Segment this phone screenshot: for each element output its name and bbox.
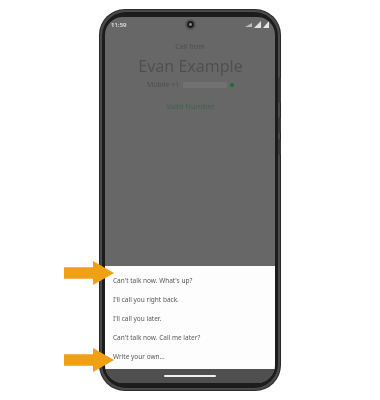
staticText: I'll call you later. (113, 314, 162, 323)
staticText: Call from (175, 42, 205, 52)
staticText: Can't talk now. What's up? (113, 276, 193, 285)
button[interactable]: Can't talk now. What's up? (105, 271, 275, 290)
button[interactable]: I'll call you later. (105, 309, 275, 328)
button[interactable]: Can't talk now. Call me later? (105, 328, 275, 347)
staticText: Mobile +1 (147, 80, 180, 90)
staticText: 11:59 (111, 21, 127, 29)
staticText: Write your own... (113, 352, 165, 361)
button[interactable]: Home gesture handle (164, 375, 216, 377)
staticText: Valid Number (166, 101, 215, 111)
staticText: Evan Example (138, 55, 243, 77)
staticText: Can't talk now. Call me later? (113, 333, 201, 342)
button[interactable]: I'll call you right back. (105, 290, 275, 309)
button[interactable]: Write your own... (105, 347, 275, 366)
staticText: I'll call you right back. (113, 295, 179, 304)
